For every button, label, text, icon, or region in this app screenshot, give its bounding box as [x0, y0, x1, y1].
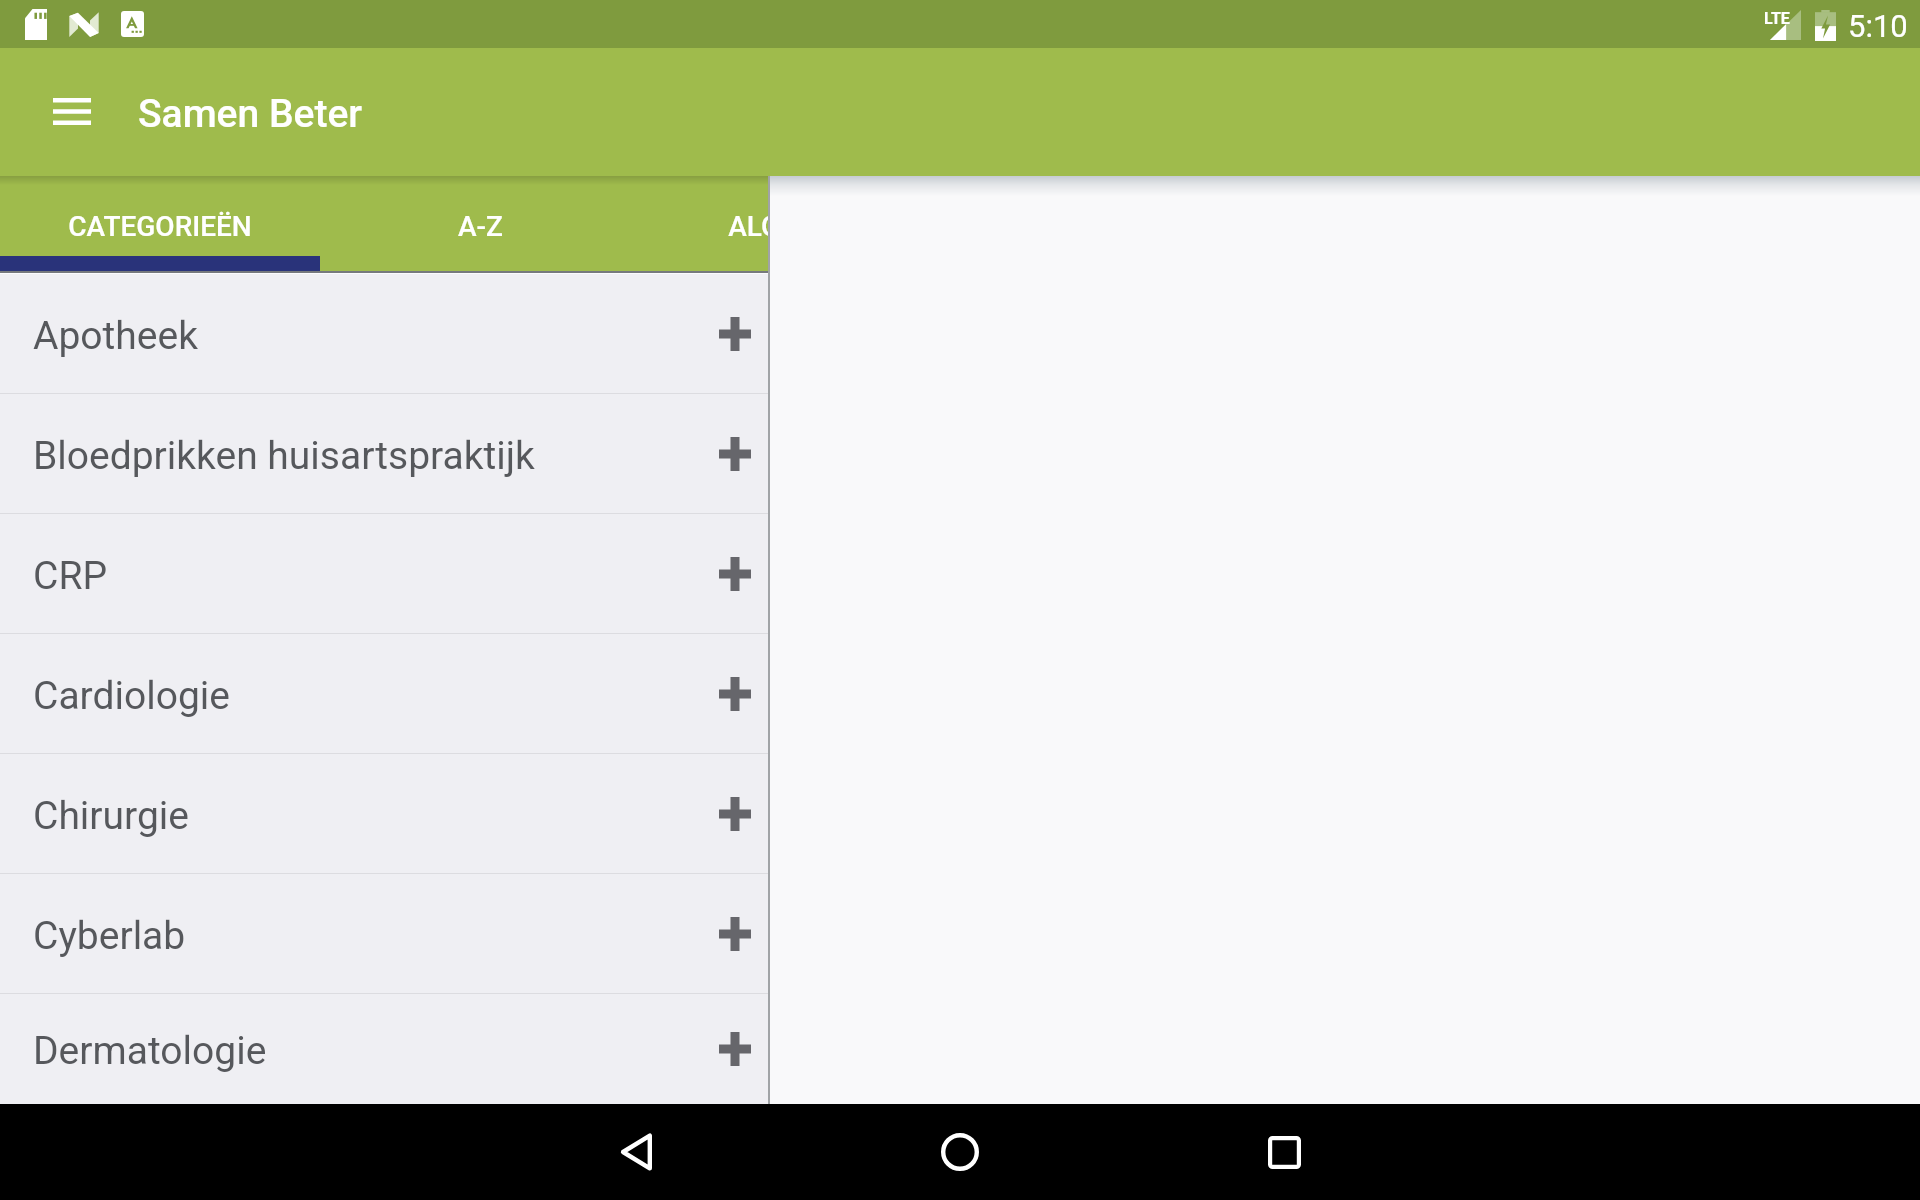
- button[interactable]: ALGEMEEN: [640, 176, 768, 273]
- button[interactable]: Cyberlab: [0, 874, 768, 993]
- button[interactable]: CATEGORIEËN: [0, 176, 320, 273]
- button[interactable]: Expand Chirurgie: [695, 774, 768, 854]
- staticText: 5:10: [1848, 8, 1908, 44]
- button[interactable]: Expand Cardiologie: [695, 654, 768, 734]
- button[interactable]: Expand CRP: [695, 534, 768, 614]
- button[interactable]: Expand Apotheek: [695, 294, 768, 374]
- staticText: LTE: [1764, 9, 1790, 28]
- staticText: A-Z: [458, 210, 503, 243]
- button[interactable]: Bloedprikken huisartspraktijk: [0, 394, 768, 513]
- staticText: CRP: [33, 553, 108, 599]
- button[interactable]: Recents: [1244, 1112, 1324, 1192]
- staticText: Bloedprikken huisartspraktijk: [33, 433, 535, 479]
- button[interactable]: Dermatologie: [0, 994, 768, 1104]
- staticText: Apotheek: [33, 313, 198, 359]
- staticText: ALGEMEEN: [728, 210, 768, 243]
- staticText: Dermatologie: [33, 1028, 267, 1074]
- button[interactable]: CRP: [0, 514, 768, 633]
- button[interactable]: A-Z: [320, 176, 640, 273]
- staticText: Chirurgie: [33, 793, 189, 839]
- staticText: Cyberlab: [33, 913, 186, 959]
- button[interactable]: Chirurgie: [0, 754, 768, 873]
- button[interactable]: Cardiologie: [0, 634, 768, 753]
- staticText: Samen Beter: [138, 91, 363, 137]
- button[interactable]: Apotheek: [0, 274, 768, 393]
- staticText: CATEGORIEËN: [68, 210, 252, 243]
- button[interactable]: Open navigation drawer: [34, 73, 110, 149]
- button[interactable]: Home: [920, 1112, 1000, 1192]
- button[interactable]: Back: [596, 1112, 676, 1192]
- button[interactable]: Expand Bloedprikken huisartspraktijk: [695, 414, 768, 494]
- button[interactable]: Expand Dermatologie: [695, 1009, 768, 1089]
- button[interactable]: Expand Cyberlab: [695, 894, 768, 974]
- staticText: Cardiologie: [33, 673, 230, 719]
